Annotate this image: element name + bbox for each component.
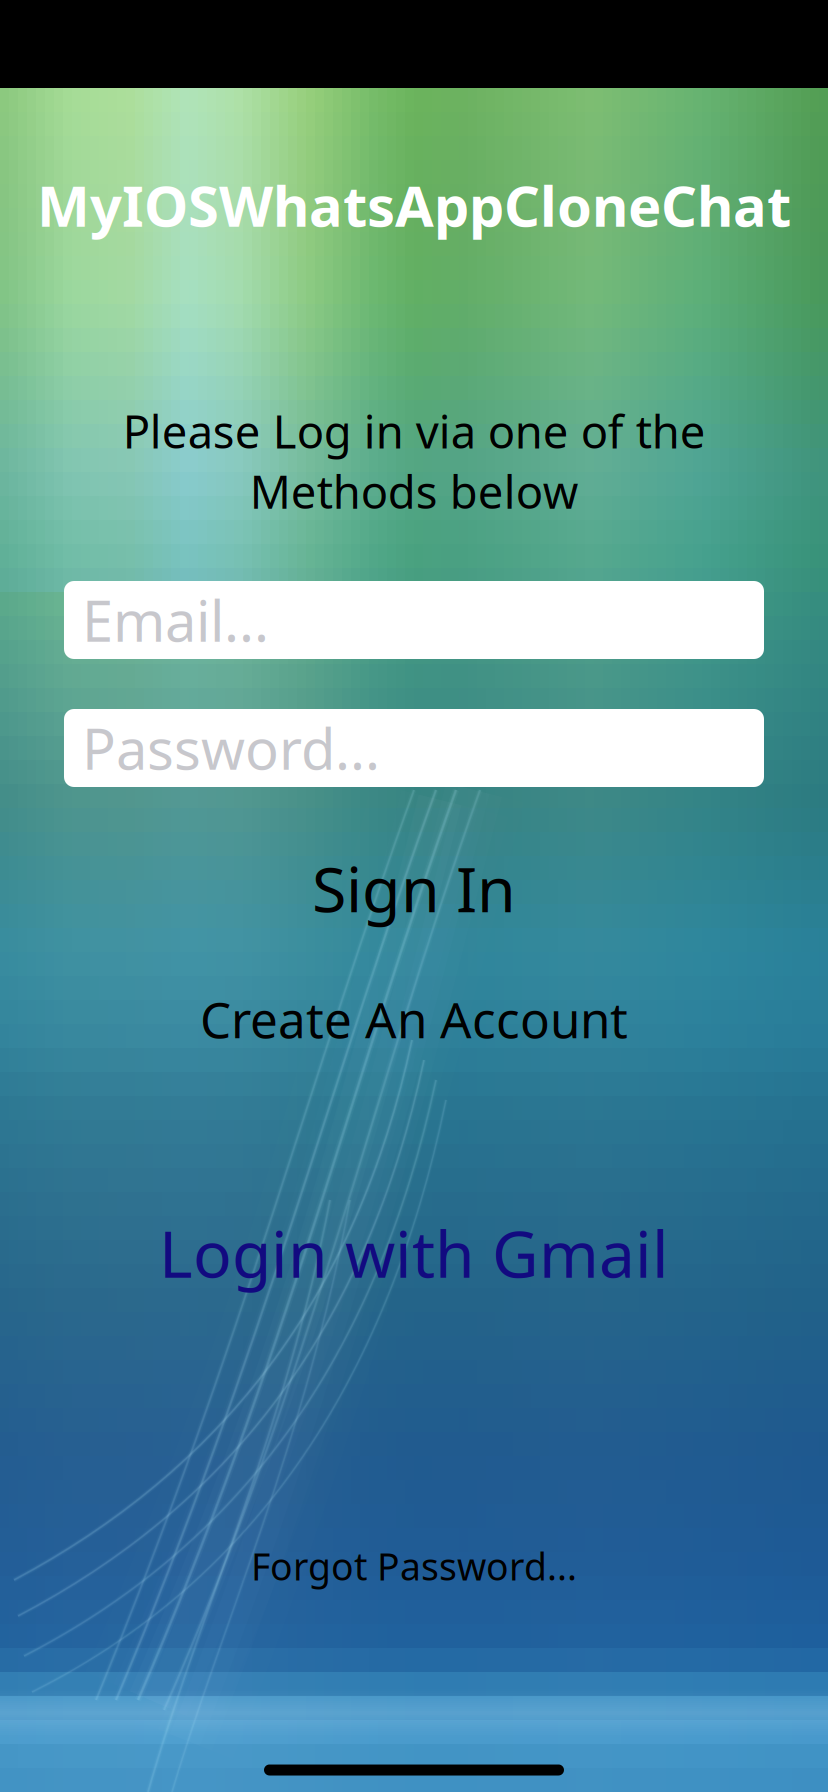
staticText: Login with Gmail	[159, 1210, 669, 1295]
staticText: Email...	[82, 583, 269, 657]
staticText: Password...	[82, 711, 380, 785]
button[interactable]: Create An Account	[160, 978, 668, 1060]
staticText: Create An Account	[200, 986, 628, 1052]
button[interactable]: Sign In	[272, 838, 556, 938]
button[interactable]: Forgot Password...	[211, 1533, 617, 1599]
staticText: MyIOSWhatsAppCloneChat	[37, 168, 791, 242]
staticText: Please Log in via one of the Methods bel…	[122, 401, 705, 521]
staticText: Sign In	[312, 846, 516, 930]
button[interactable]: Login with Gmail	[119, 1202, 709, 1303]
button[interactable]: Email...	[64, 581, 764, 659]
staticText: Forgot Password...	[251, 1541, 577, 1591]
button[interactable]: Password...	[64, 709, 764, 787]
